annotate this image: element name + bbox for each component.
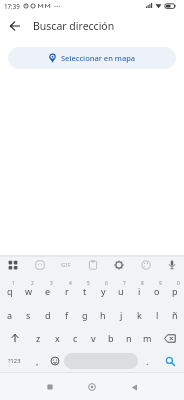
staticText: u: [118, 285, 124, 297]
staticText: o: [154, 285, 160, 297]
staticText: 4: [69, 280, 72, 287]
staticText: c: [73, 332, 78, 344]
staticText: Buscar dirección: [33, 19, 115, 33]
button[interactable]: Seleccionar en mapa: [8, 47, 176, 69]
button[interactable]: ñ: [166, 303, 184, 326]
staticText: 5: [87, 280, 90, 287]
button[interactable]: a: [0, 303, 19, 326]
button[interactable]: n: [120, 326, 138, 350]
staticText: 9: [159, 280, 162, 287]
button[interactable]: r: [57, 279, 76, 303]
staticText: h: [100, 309, 106, 321]
staticText: Seleccionar en mapa: [61, 53, 136, 63]
button[interactable]: v: [84, 326, 102, 350]
button[interactable]: [156, 326, 184, 350]
staticText: 0: [177, 280, 180, 287]
staticText: m: [143, 332, 152, 344]
staticText: z: [36, 332, 41, 344]
button[interactable]: [0, 12, 30, 40]
button[interactable]: p: [166, 279, 184, 303]
button[interactable]: m: [138, 326, 156, 350]
button[interactable]: ,: [28, 350, 46, 372]
button[interactable]: [163, 257, 180, 273]
staticText: s: [26, 309, 31, 321]
button[interactable]: [31, 257, 48, 273]
button[interactable]: [137, 257, 154, 273]
staticText: d: [45, 309, 51, 321]
button[interactable]: e: [38, 279, 57, 303]
staticText: q: [7, 285, 13, 297]
button[interactable]: [82, 377, 102, 397]
button[interactable]: ?123: [0, 350, 28, 372]
staticText: y: [101, 285, 106, 297]
button[interactable]: o: [148, 279, 166, 303]
button[interactable]: w: [19, 279, 38, 303]
staticText: e: [45, 285, 51, 297]
staticText: r: [65, 285, 69, 297]
staticText: 1: [12, 280, 15, 287]
staticText: k: [137, 309, 142, 321]
button[interactable]: q: [0, 279, 19, 303]
button[interactable]: f: [57, 303, 76, 326]
button[interactable]: d: [38, 303, 57, 326]
staticText: ,: [36, 355, 39, 367]
staticText: a: [7, 309, 13, 321]
staticText: b: [108, 332, 114, 344]
staticText: l: [156, 309, 159, 321]
staticText: j: [120, 309, 123, 321]
staticText: ñ: [172, 309, 178, 321]
button[interactable]: [110, 257, 127, 273]
staticText: 17:39: [4, 2, 20, 10]
button[interactable]: k: [130, 303, 148, 326]
button[interactable]: [124, 377, 144, 397]
staticText: x: [55, 332, 60, 344]
button[interactable]: h: [94, 303, 112, 326]
button[interactable]: [0, 326, 29, 350]
staticText: g: [82, 309, 88, 321]
button[interactable]: u: [112, 279, 130, 303]
button[interactable]: j: [112, 303, 130, 326]
staticText: ?123: [8, 357, 21, 365]
button[interactable]: [64, 353, 138, 369]
button[interactable]: l: [148, 303, 166, 326]
button[interactable]: c: [66, 326, 84, 350]
staticText: 2: [31, 280, 34, 287]
button[interactable]: GIF: [57, 257, 74, 273]
button[interactable]: s: [19, 303, 38, 326]
staticText: i: [138, 285, 141, 297]
staticText: .: [146, 355, 149, 367]
staticText: n: [126, 332, 132, 344]
button[interactable]: [46, 350, 64, 372]
staticText: p: [172, 285, 178, 297]
button[interactable]: z: [29, 326, 48, 350]
staticText: 7: [123, 280, 126, 287]
button[interactable]: i: [130, 279, 148, 303]
button[interactable]: [156, 350, 184, 372]
button[interactable]: [4, 257, 21, 273]
button[interactable]: [40, 377, 60, 397]
button[interactable]: .: [138, 350, 156, 372]
staticText: 6: [105, 280, 108, 287]
staticText: f: [65, 309, 69, 321]
staticText: t: [83, 285, 87, 297]
button[interactable]: b: [102, 326, 120, 350]
staticText: v: [91, 332, 96, 344]
button[interactable]: g: [76, 303, 94, 326]
staticText: 3: [50, 280, 53, 287]
button[interactable]: y: [94, 279, 112, 303]
button[interactable]: [84, 257, 101, 273]
staticText: GIF: [61, 261, 71, 269]
staticText: w: [25, 285, 33, 297]
button[interactable]: x: [48, 326, 66, 350]
staticText: 8: [141, 280, 144, 287]
button[interactable]: t: [76, 279, 94, 303]
